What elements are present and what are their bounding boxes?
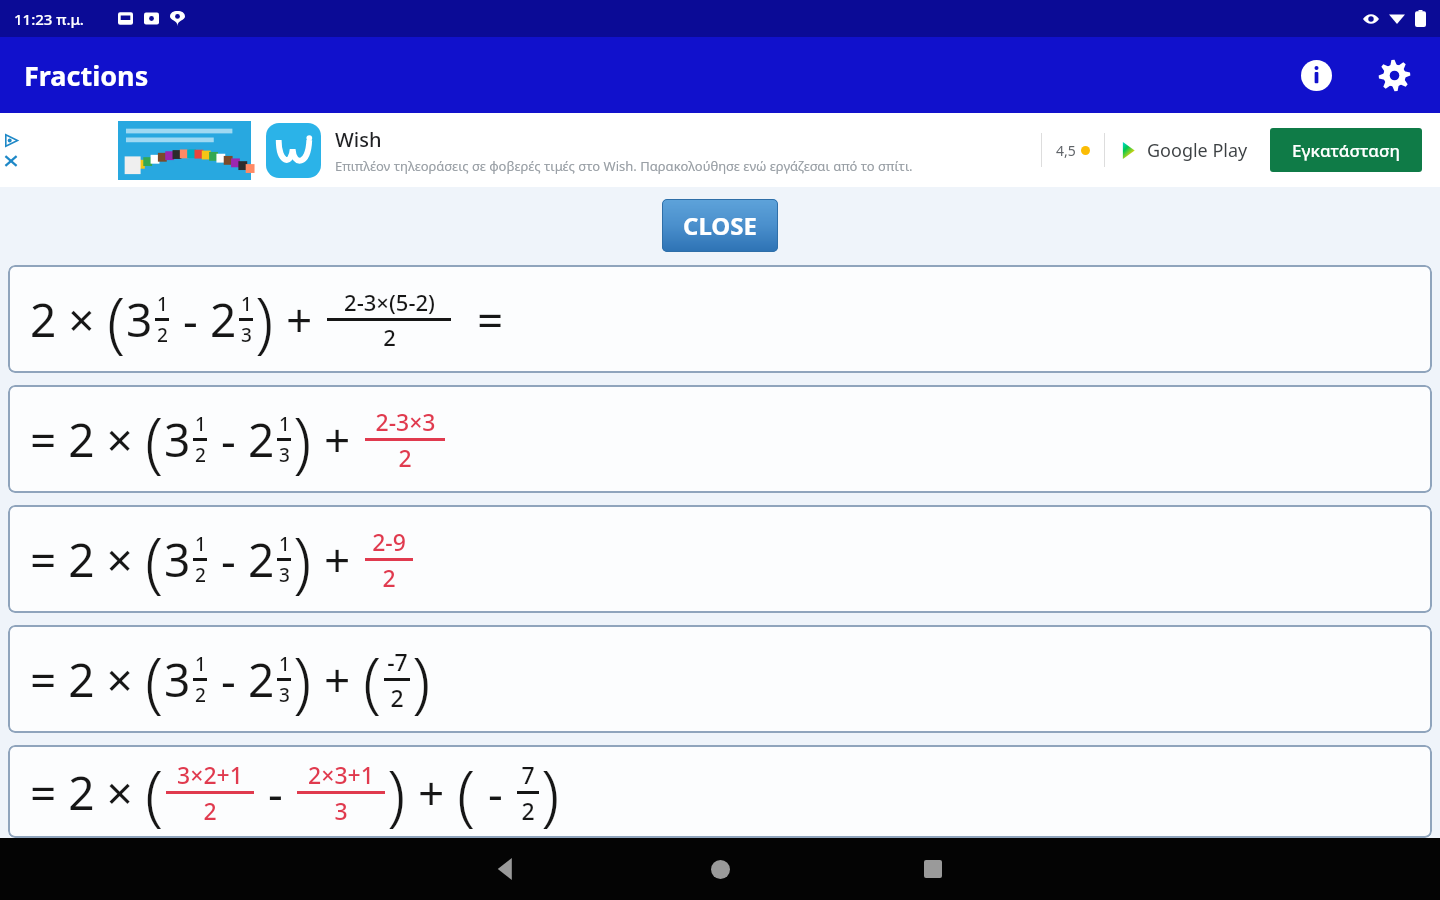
staticText: ) — [255, 274, 274, 364]
staticText: ( — [145, 634, 164, 724]
staticText: 1 — [157, 291, 168, 317]
button[interactable]: 2 × — [8, 265, 1432, 373]
staticText: 1 — [195, 531, 206, 557]
staticText: 2 — [195, 682, 206, 708]
staticText: 11:23 π.μ. — [14, 9, 84, 29]
staticText: = 2 × — [30, 528, 145, 591]
staticText: + — [312, 528, 363, 591]
staticText: 2 — [157, 322, 168, 348]
staticText: ( — [145, 514, 164, 604]
staticText: 1 — [279, 651, 290, 677]
staticText: 2 — [195, 562, 206, 588]
staticText: ( — [457, 747, 476, 837]
button[interactable]: = 2 × — [8, 385, 1432, 493]
staticText: 2 × — [30, 288, 107, 351]
staticText: - — [209, 648, 248, 711]
staticText: 2 — [210, 288, 237, 351]
button[interactable]: Settings — [1370, 51, 1418, 99]
button[interactable]: Εγκατάσταση — [1270, 128, 1422, 172]
staticText: + — [312, 408, 363, 471]
staticText: 3 — [279, 442, 290, 468]
staticText: - — [256, 761, 295, 824]
button[interactable]: Recent apps — [901, 838, 965, 900]
staticText: 2-3×3 — [375, 406, 436, 437]
staticText: ( — [145, 394, 164, 484]
staticText: Wish — [335, 126, 382, 153]
staticText: ) — [387, 747, 406, 837]
button[interactable]: Back — [475, 838, 539, 900]
staticText: 2 — [382, 562, 396, 593]
staticText: CLOSE — [683, 209, 757, 242]
staticText: Επιπλέον τηλεοράσεις σε φοβερές τιμές στ… — [335, 157, 913, 175]
staticText: = 2 × — [30, 761, 145, 824]
staticText: - — [171, 288, 210, 351]
staticText: 3×2+1 — [177, 759, 243, 790]
staticText: 3 — [241, 322, 252, 348]
staticText: 2 — [248, 408, 275, 471]
staticText: 1 — [195, 411, 206, 437]
staticText: - — [476, 761, 515, 824]
staticText: 2 — [390, 682, 404, 713]
staticText: 3 — [164, 528, 191, 591]
staticText: 2 — [521, 795, 535, 826]
staticText: Google Play — [1147, 138, 1248, 163]
staticText: 2×3+1 — [308, 759, 374, 790]
staticText: 1 — [279, 411, 290, 437]
staticText: 1 — [279, 531, 290, 557]
staticText: + — [274, 288, 325, 351]
staticText: Εγκατάσταση — [1292, 139, 1401, 162]
staticText: 1 — [195, 651, 206, 677]
staticText: ) — [541, 747, 560, 837]
staticText: - — [209, 408, 248, 471]
staticText: 2 — [195, 442, 206, 468]
staticText: 2 — [248, 648, 275, 711]
button[interactable]: CLOSE — [662, 199, 778, 252]
button[interactable]: Home — [688, 838, 752, 900]
staticText: 3 — [279, 682, 290, 708]
staticText: 2 — [383, 322, 396, 352]
staticText: ( — [107, 274, 126, 364]
staticText: 3 — [279, 562, 290, 588]
staticText: -7 — [387, 646, 408, 677]
staticText: 7 — [521, 759, 535, 790]
staticText: 1 — [241, 291, 252, 317]
staticText: 2-9 — [372, 526, 406, 557]
staticText: 2-3×(5-2) — [344, 287, 435, 317]
staticText: = 2 × — [30, 648, 145, 711]
button[interactable]: Info — [1292, 51, 1340, 99]
staticText: 2 — [398, 442, 412, 473]
staticText: 3 — [334, 795, 348, 826]
staticText: ) — [293, 514, 312, 604]
staticText: 2 — [248, 528, 275, 591]
staticText: 3 — [126, 288, 153, 351]
staticText: 4,5 — [1056, 141, 1076, 160]
staticText: ) — [293, 394, 312, 484]
staticText: + — [312, 648, 363, 711]
staticText: Fractions — [24, 57, 149, 94]
staticText: - — [209, 528, 248, 591]
staticText: 3 — [164, 648, 191, 711]
staticText: = — [453, 288, 516, 351]
staticText: = 2 × — [30, 408, 145, 471]
staticText: ( — [145, 747, 164, 837]
button[interactable]: = 2 × — [8, 625, 1432, 733]
staticText: ) — [412, 634, 431, 724]
staticText: + — [406, 761, 457, 824]
staticText: ) — [293, 634, 312, 724]
button[interactable]: = 2 × — [8, 745, 1432, 838]
staticText: 2 — [203, 795, 217, 826]
staticText: ( — [363, 634, 382, 724]
staticText: 3 — [164, 408, 191, 471]
button[interactable]: = 2 × — [8, 505, 1432, 613]
